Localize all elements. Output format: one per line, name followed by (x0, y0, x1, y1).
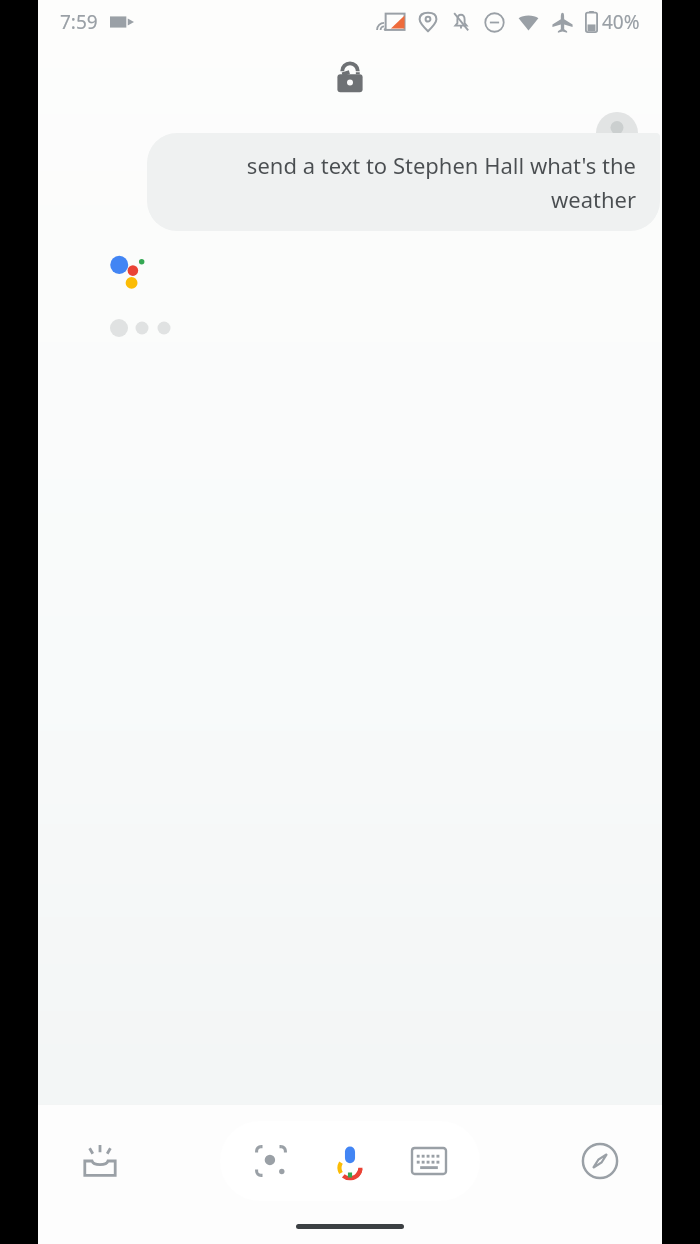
button[interactable]: send a text to Stephen Hall what's the w… (147, 133, 660, 231)
button[interactable]: Keyboard (401, 1133, 457, 1189)
staticText: 40% (602, 9, 640, 35)
button[interactable]: Google Lens (243, 1133, 299, 1189)
button[interactable]: Explore (568, 1129, 632, 1193)
button[interactable]: Voice search (322, 1133, 378, 1189)
staticText: send a text to Stephen Hall what's the w… (171, 150, 636, 214)
button[interactable]: Snapshot (68, 1129, 132, 1193)
button[interactable]: Google Lens (220, 1121, 480, 1201)
staticText: 7:59 (60, 9, 98, 35)
